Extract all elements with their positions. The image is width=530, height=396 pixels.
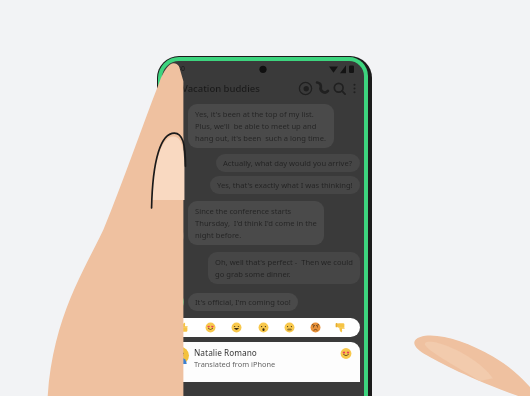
button[interactable]: Video call <box>297 80 314 97</box>
button[interactable]: Oh, well that's perfect - Then we could … <box>208 252 360 284</box>
staticText: 9:30 <box>171 64 185 74</box>
staticText: Natalie Romano <box>194 347 257 358</box>
staticText: Yes, that's exactly what I was thinking! <box>217 180 353 190</box>
button[interactable]: Search <box>331 80 348 97</box>
staticText: Oh, well that's perfect - Then we could … <box>215 257 353 279</box>
button[interactable]: Reaction 0 <box>177 320 192 335</box>
button[interactable]: Actually, what day would you arrive? <box>216 154 360 172</box>
button[interactable]: Reaction 3 <box>256 320 271 335</box>
staticText: Vacation buddies <box>182 82 260 95</box>
button[interactable]: Reaction 6 <box>334 320 349 335</box>
staticText: Actually, what day would you arrive? <box>223 158 353 168</box>
button[interactable]: Reaction 0 <box>166 318 360 337</box>
button[interactable]: Reaction 2 <box>229 320 244 335</box>
button[interactable]: Reaction 5 <box>308 320 323 335</box>
button[interactable]: More options <box>348 82 361 95</box>
button[interactable]: Reaction 1 <box>203 320 218 335</box>
staticText: Yes, it's been at the top of my list. Pl… <box>195 109 327 143</box>
button[interactable]: Yes, that's exactly what I was thinking! <box>210 176 360 194</box>
staticText: It's official, I'm coming too! <box>195 297 291 307</box>
button[interactable]: Since the conference starts Thursday, I'… <box>188 201 324 245</box>
button[interactable]: Natalie Romano <box>166 342 360 382</box>
button[interactable]: It's official, I'm coming too! <box>188 293 298 311</box>
staticText: Translated from iPhone <box>194 359 276 369</box>
button[interactable]: Call <box>314 80 331 97</box>
staticText: Since the conference starts Thursday, I'… <box>195 206 317 240</box>
button[interactable]: Reaction 4 <box>282 320 297 335</box>
button[interactable]: Yes, it's been at the top of my list. Pl… <box>188 104 334 148</box>
